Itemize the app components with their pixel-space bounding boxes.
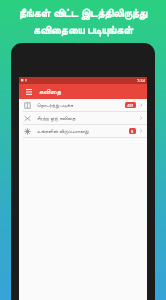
staticText: 491 <box>127 103 134 108</box>
button[interactable]: தொடர்ந்து படிக்க <box>19 99 147 111</box>
staticText: உங்களின் விருப்பமானது <box>37 128 89 135</box>
staticText: தொடர்ந்து படிக்க <box>37 102 74 109</box>
button[interactable]: Open navigation menu <box>24 87 33 96</box>
staticText: 8 <box>131 129 134 134</box>
staticText: கவிதை <box>39 88 61 95</box>
staticText: 7:34 <box>137 78 145 83</box>
staticText: கவிதையை படியுங்கள் <box>33 22 133 37</box>
button[interactable]: சீரற்ற ஒரு கவிதை <box>19 112 147 124</box>
button[interactable]: உங்களின் விருப்பமானது <box>19 125 147 137</box>
staticText: நீங்கள் விட்ட இடத்திலிருந்து <box>19 5 147 20</box>
staticText: சீரற்ற ஒரு கவிதை <box>37 115 76 122</box>
